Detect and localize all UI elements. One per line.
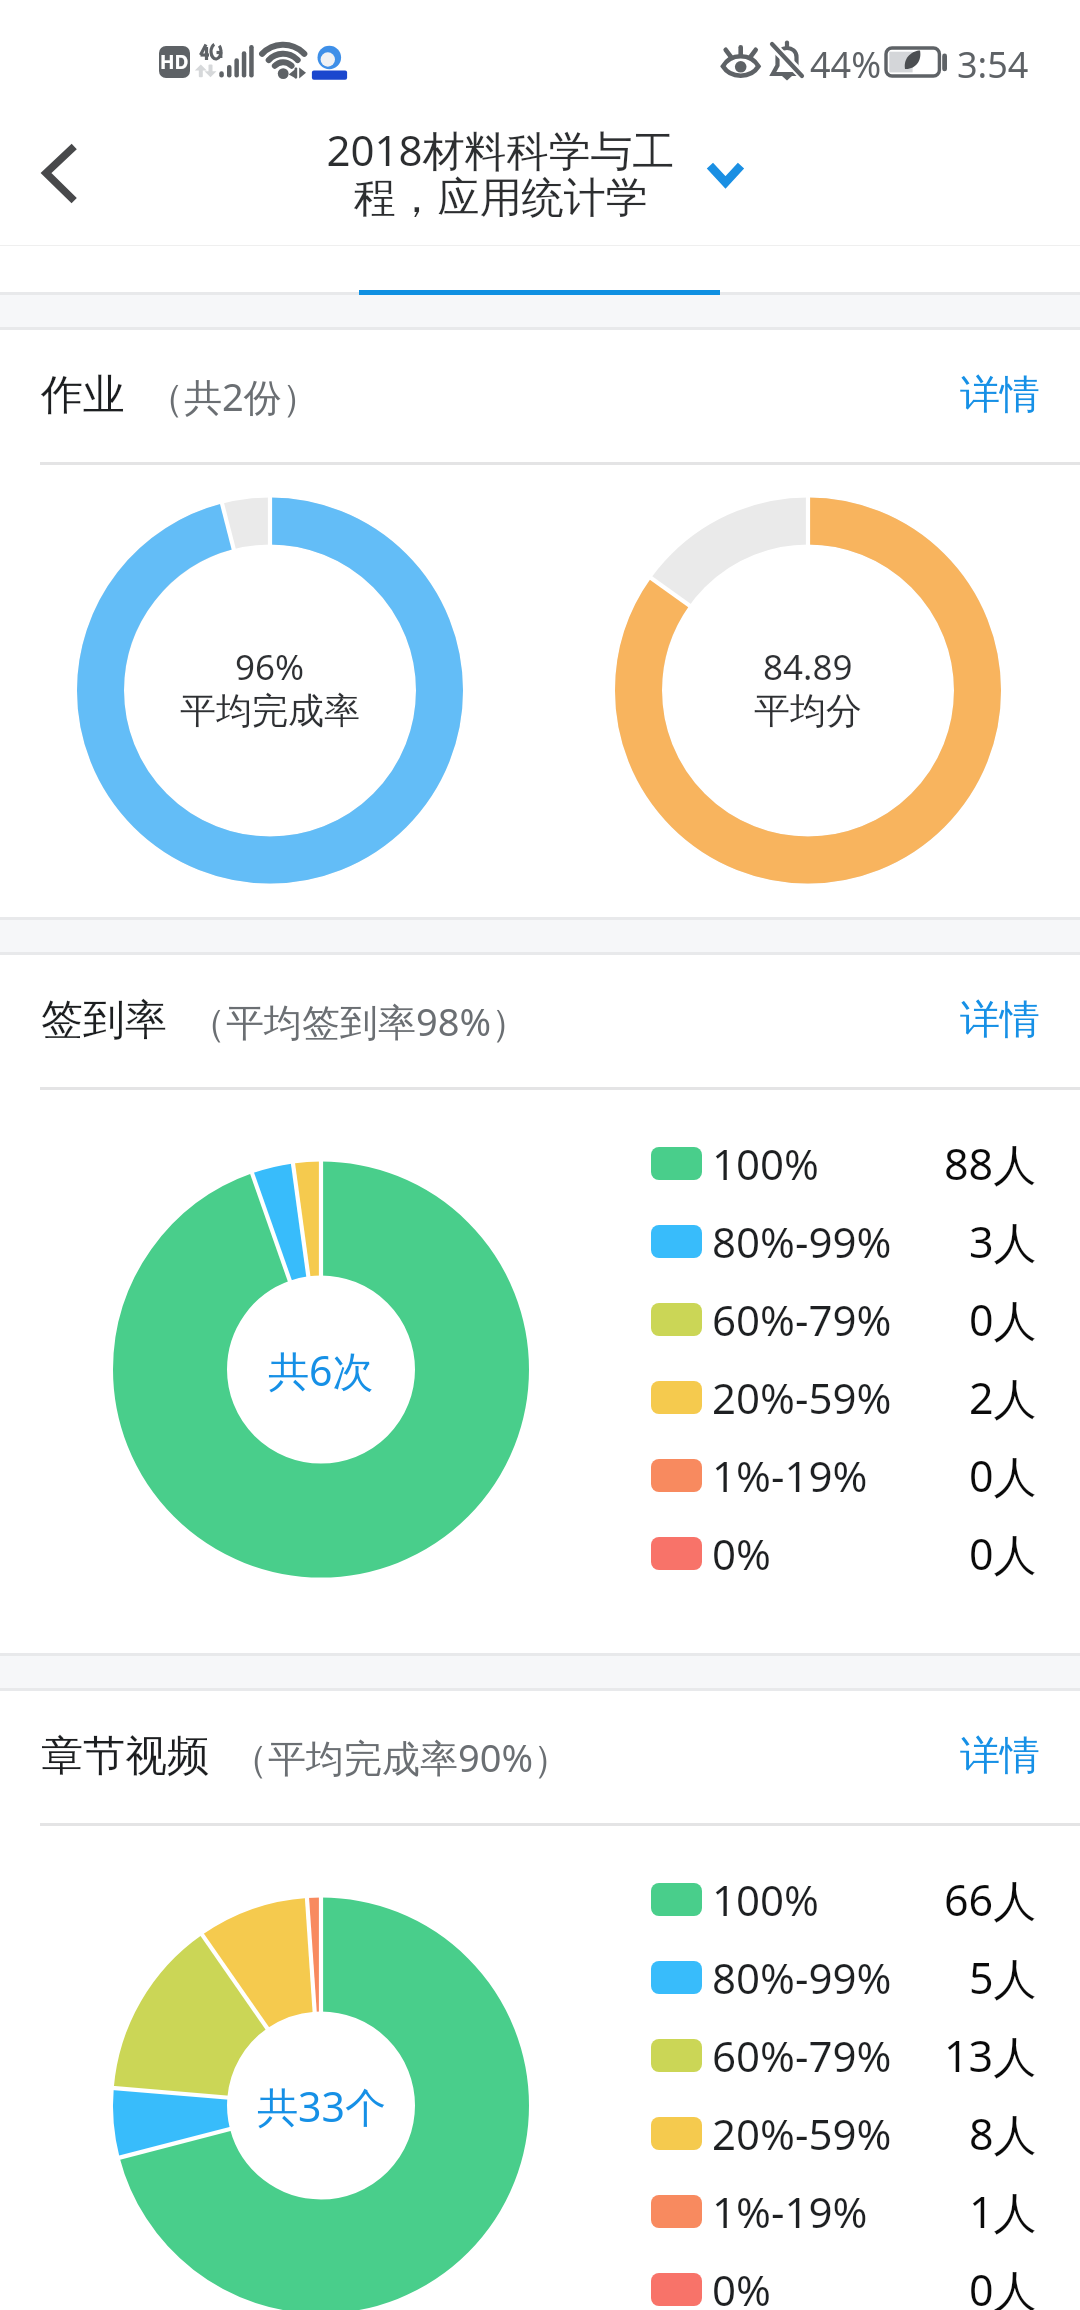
staticText: 1%-19% — [712, 1447, 868, 1504]
staticText: 签到率 — [41, 994, 167, 1047]
staticText: 84.89 — [763, 643, 853, 687]
staticText: 2人 — [969, 1368, 1037, 1427]
staticText: 8人 — [969, 2104, 1037, 2163]
staticText: 0% — [712, 2261, 771, 2310]
staticText: 3人 — [969, 1212, 1037, 1271]
staticText: 共33个 — [257, 2078, 386, 2134]
staticText: 66人 — [944, 1870, 1037, 1929]
button[interactable]: Tabs — [0, 246, 1080, 292]
staticText: 13人 — [944, 2026, 1037, 2085]
staticText: 作业 — [41, 369, 125, 422]
button[interactable]: 详情 — [920, 975, 1080, 1069]
staticText: 详情 — [960, 369, 1040, 419]
button[interactable]: 详情 — [920, 1711, 1080, 1805]
staticText: 3:54 — [957, 40, 1029, 89]
staticText: 80%-99% — [712, 1949, 892, 2006]
staticText: 平均完成率 — [180, 688, 360, 733]
staticText: 100% — [712, 1871, 819, 1928]
staticText: 0人 — [969, 2260, 1037, 2310]
staticText: 44% — [810, 40, 882, 89]
staticText: 0人 — [969, 1446, 1037, 1505]
staticText: 100% — [712, 1135, 819, 1192]
staticText: 60%-79% — [712, 2027, 892, 2084]
staticText: HD — [160, 49, 189, 75]
button[interactable]: Expand course selector — [685, 137, 767, 219]
staticText: 共6次 — [268, 1342, 374, 1398]
staticText: 1人 — [969, 2182, 1037, 2241]
staticText: 详情 — [960, 1730, 1040, 1780]
button[interactable]: Back — [0, 117, 118, 235]
staticText: 详情 — [960, 994, 1040, 1044]
staticText: （平均签到率98%） — [188, 995, 530, 1047]
staticText: 20%-59% — [712, 1369, 892, 1426]
staticText: 88人 — [944, 1134, 1037, 1193]
staticText: 2018材料科学与工 程，应用统计学 — [326, 121, 675, 225]
staticText: 0% — [712, 1525, 771, 1582]
staticText: （平均完成率90%） — [230, 1731, 572, 1783]
button[interactable]: 详情 — [920, 350, 1080, 444]
staticText: 0人 — [969, 1524, 1037, 1583]
staticText: 章节视频 — [41, 1730, 209, 1783]
staticText: 60%-79% — [712, 1291, 892, 1348]
staticText: 5人 — [969, 1948, 1037, 2007]
staticText: 0人 — [969, 1290, 1037, 1349]
staticText: 96% — [235, 643, 305, 687]
staticText: 1%-19% — [712, 2183, 868, 2240]
staticText: 80%-99% — [712, 1213, 892, 1270]
staticText: 平均分 — [754, 688, 862, 733]
staticText: （共2份） — [146, 370, 320, 422]
staticText: 20%-59% — [712, 2105, 892, 2162]
